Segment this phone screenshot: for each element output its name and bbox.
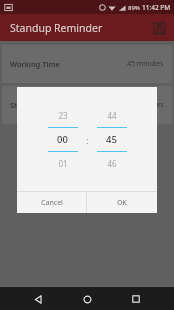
staticText: 45 minutes <box>127 59 164 69</box>
button[interactable]: Recents <box>125 288 147 310</box>
button[interactable]: OK <box>87 192 157 213</box>
button[interactable]: Standing Time <box>2 86 172 124</box>
staticText: 89% <box>128 4 140 12</box>
staticText: 46 <box>107 158 117 169</box>
button[interactable]: Cancel <box>17 192 86 213</box>
staticText: Working Time <box>10 59 60 69</box>
staticText: Cancel <box>41 198 63 208</box>
button[interactable]: Back <box>27 288 49 310</box>
staticText: 00 <box>57 133 68 146</box>
button[interactable]: Save <box>149 18 169 38</box>
staticText: 01 <box>58 158 68 169</box>
button[interactable]: Working Time <box>2 45 172 83</box>
staticText: 44 <box>107 110 117 121</box>
button: 23 <box>17 87 157 213</box>
staticText: 23 <box>58 110 68 121</box>
staticText: 5 minutes <box>131 100 164 110</box>
staticText: 11:42 PM <box>142 3 171 12</box>
staticText: OK <box>117 198 127 208</box>
staticText: 45 <box>106 133 117 146</box>
staticText: Standup Reminder <box>10 21 103 35</box>
staticText: Standing Time <box>10 100 62 110</box>
button[interactable]: 23 <box>45 110 80 169</box>
button[interactable]: Home <box>76 288 98 310</box>
button[interactable]: 44 <box>94 110 129 169</box>
staticText: : <box>86 134 89 146</box>
